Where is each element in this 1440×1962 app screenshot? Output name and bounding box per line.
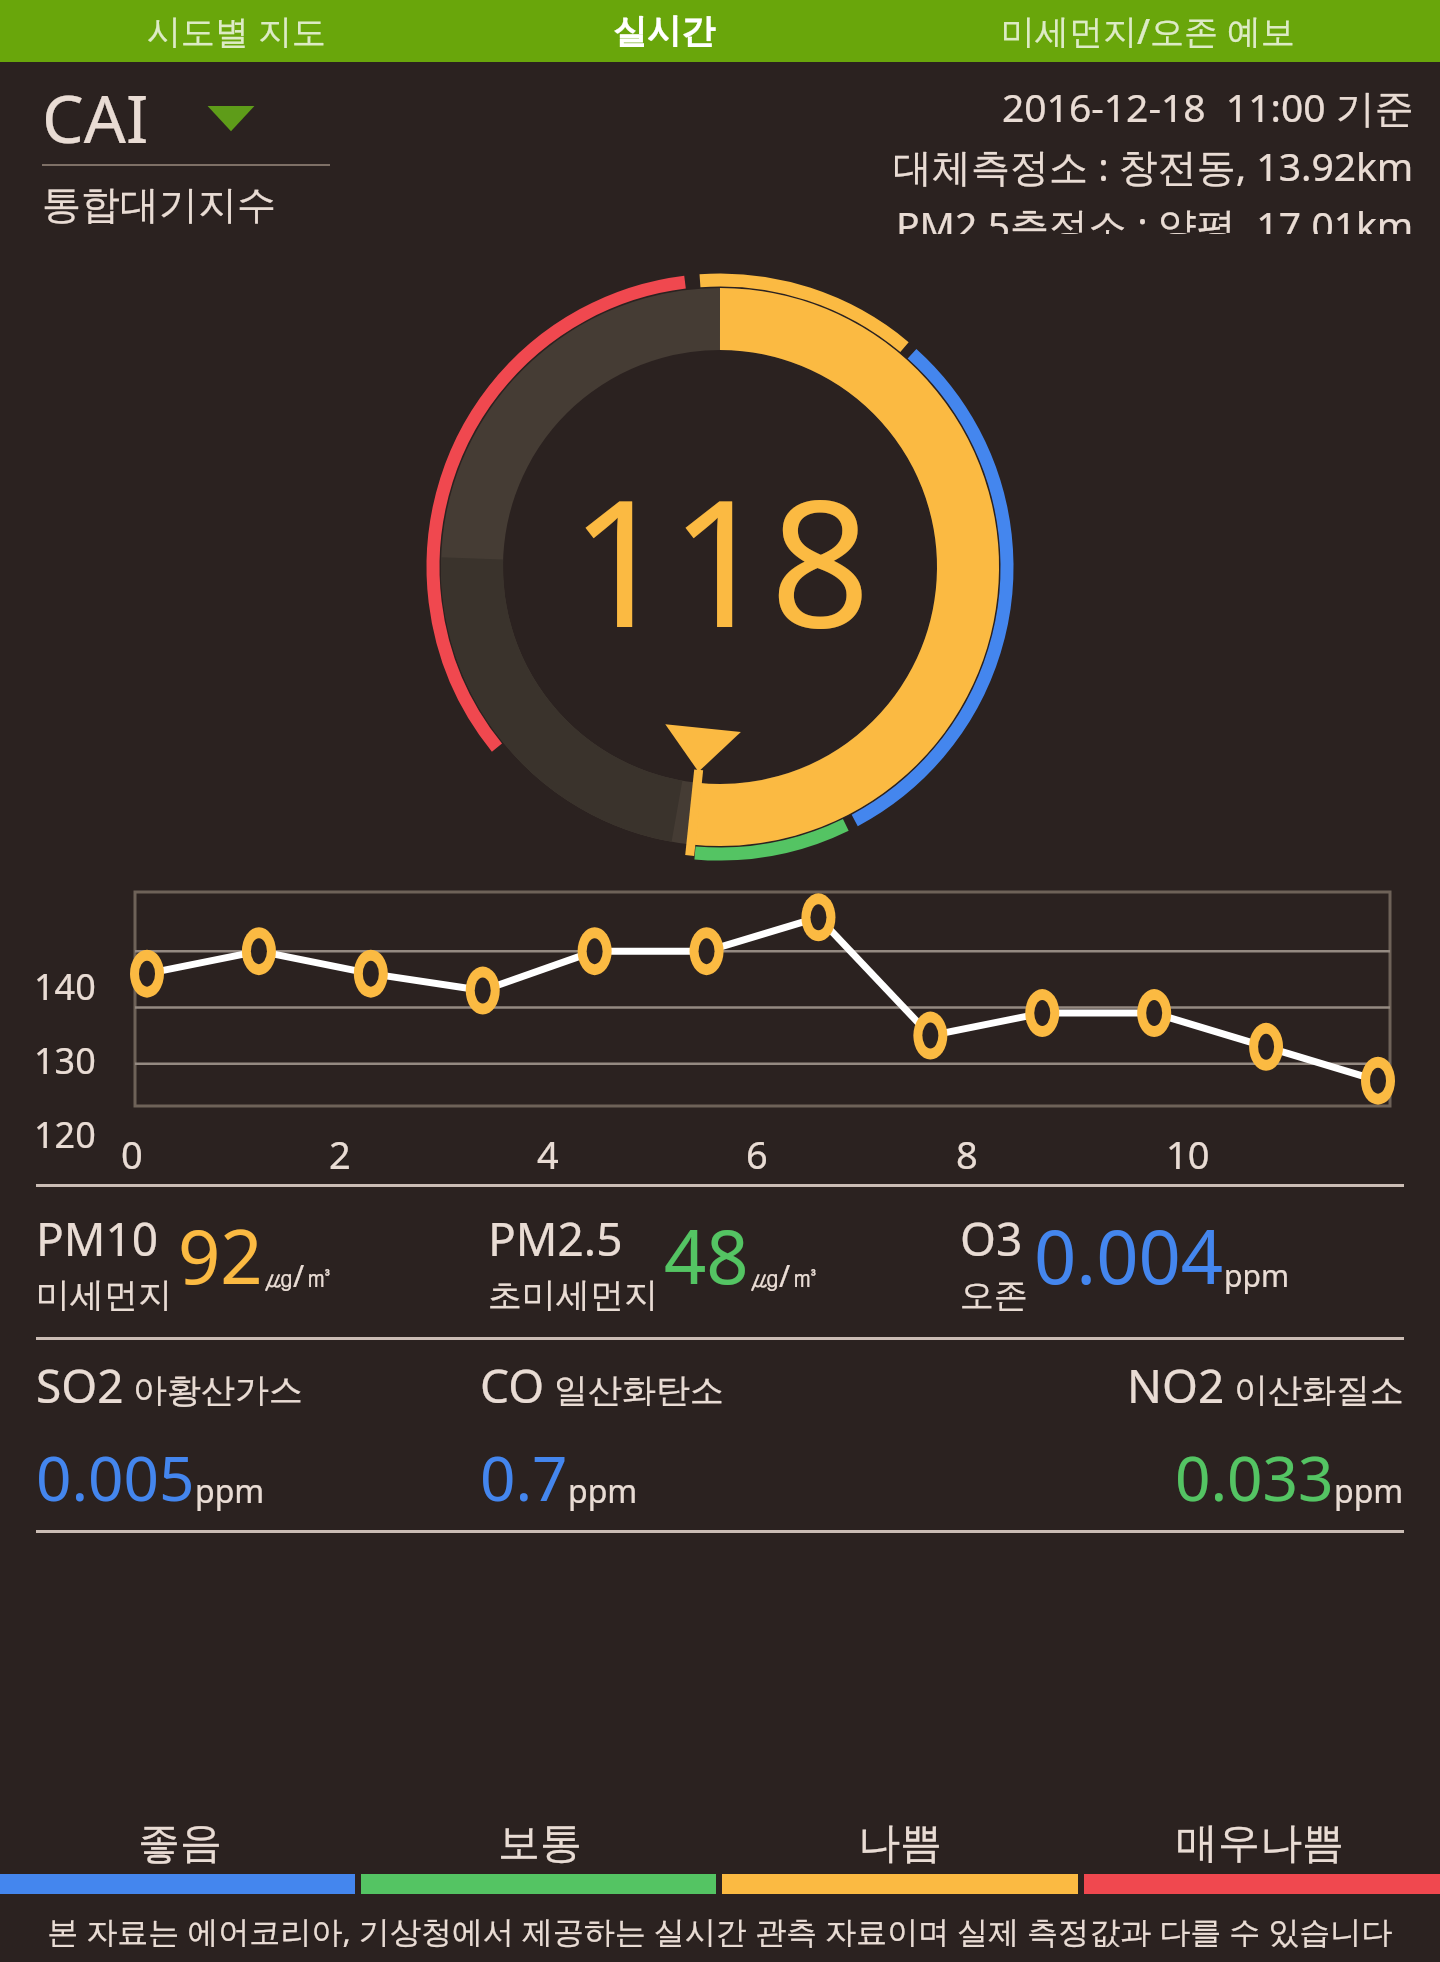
- staticText: 오존: [960, 1274, 1028, 1317]
- staticText: 0.033: [1175, 1435, 1334, 1519]
- button[interactable]: 보통: [360, 1817, 720, 1870]
- button[interactable]: 시도별 지도: [0, 0, 472, 62]
- staticText: 140: [34, 962, 96, 1011]
- staticText: 보통: [498, 1817, 582, 1870]
- button[interactable]: PM10: [0, 1187, 480, 1337]
- staticText: 실시간: [613, 10, 715, 53]
- staticText: 2016-12-18 11:00 기준: [1002, 80, 1414, 133]
- staticText: 나쁨: [858, 1817, 942, 1870]
- staticText: CAI: [42, 72, 149, 162]
- staticText: PM2.5: [488, 1207, 623, 1270]
- staticText: 48: [664, 1205, 749, 1306]
- staticText: 초미세먼지: [488, 1274, 658, 1317]
- staticText: 2: [329, 1128, 351, 1180]
- staticText: 이산화질소: [1234, 1369, 1404, 1412]
- staticText: 미세먼지/오존 예보: [1001, 8, 1295, 54]
- staticText: 아황산가스: [133, 1369, 303, 1412]
- button[interactable]: NO2: [960, 1354, 1440, 1530]
- button[interactable]: 실시간: [472, 0, 855, 62]
- staticText: 0.005: [36, 1435, 195, 1519]
- button[interactable]: O3: [960, 1187, 1440, 1337]
- staticText: 미세먼지: [36, 1274, 172, 1317]
- staticText: ㎍/㎥: [749, 1255, 821, 1296]
- staticText: 10: [1166, 1128, 1210, 1180]
- staticText: ppm: [568, 1469, 638, 1513]
- button[interactable]: 미세먼지/오존 예보: [855, 0, 1440, 62]
- staticText: 120: [34, 1110, 96, 1159]
- button[interactable]: 매우나쁨: [1080, 1817, 1440, 1870]
- staticText: 0.7: [480, 1435, 568, 1519]
- staticText: 130: [34, 1036, 96, 1085]
- staticText: ㎍/㎥: [263, 1255, 335, 1296]
- staticText: 4: [537, 1128, 559, 1180]
- staticText: ppm: [1334, 1469, 1404, 1513]
- staticText: 0: [121, 1128, 143, 1180]
- other: Choose index: [205, 100, 257, 134]
- staticText: PM2.5측정소 : 양평, 17.01km: [896, 198, 1414, 234]
- button[interactable]: CAI: [0, 62, 430, 229]
- staticText: 통합대기지수: [42, 180, 276, 229]
- staticText: 대체측정소 : 창전동, 13.92km: [893, 139, 1414, 192]
- staticText: 일산화탄소: [554, 1369, 724, 1412]
- staticText: 92: [178, 1205, 263, 1306]
- button[interactable]: PM2.5: [480, 1187, 960, 1337]
- staticText: ppm: [1224, 1255, 1289, 1296]
- staticText: 좋음: [138, 1817, 222, 1870]
- staticText: 0.004: [1034, 1205, 1224, 1306]
- staticText: O3: [960, 1207, 1023, 1270]
- staticText: 시도별 지도: [147, 8, 326, 54]
- button[interactable]: CO: [480, 1354, 960, 1530]
- button[interactable]: SO2: [0, 1354, 480, 1530]
- staticText: 매우나쁨: [1176, 1817, 1344, 1870]
- button[interactable]: 나쁨: [720, 1817, 1080, 1870]
- staticText: 118: [570, 440, 871, 678]
- staticText: 6: [746, 1128, 768, 1180]
- staticText: SO2: [36, 1354, 124, 1417]
- button[interactable]: 좋음: [0, 1817, 360, 1870]
- staticText: NO2: [1127, 1354, 1225, 1417]
- staticText: PM10: [36, 1207, 159, 1270]
- staticText: 8: [956, 1128, 978, 1180]
- staticText: ppm: [195, 1469, 265, 1513]
- staticText: CO: [480, 1354, 545, 1417]
- staticText: 본 자료는 에어코리아, 기상청에서 제공하는 실시간 관측 자료이며 실제 측…: [47, 1910, 1393, 1952]
